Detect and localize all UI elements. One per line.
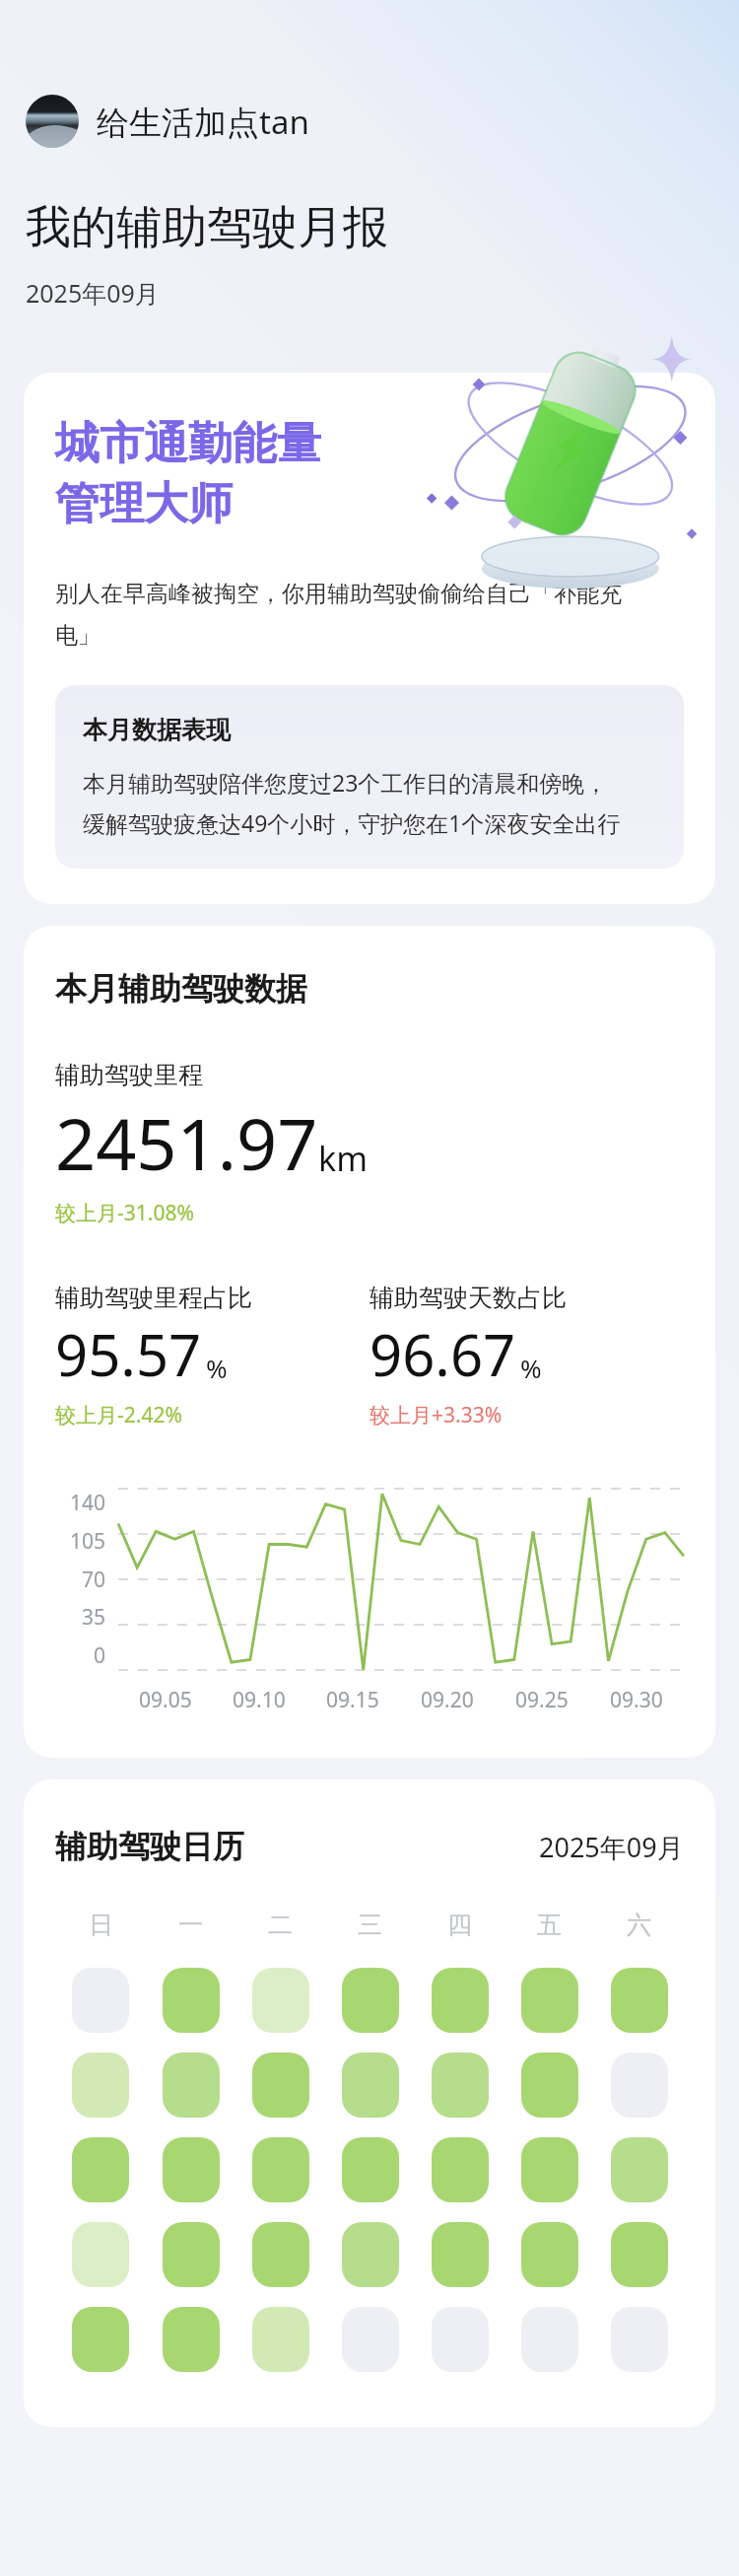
button[interactable]: 城市通勤能量 — [24, 373, 715, 904]
staticText: 给生活加点tan — [97, 100, 309, 144]
button[interactable]: 辅助驾驶日历 — [24, 1779, 715, 2427]
button[interactable] — [611, 2307, 668, 2372]
button[interactable] — [521, 2053, 578, 2118]
button[interactable] — [252, 2307, 309, 2372]
staticText: 六 — [627, 1910, 651, 1940]
button[interactable] — [342, 2307, 399, 2372]
button[interactable] — [342, 2053, 399, 2118]
staticText: 辅助驾驶里程占比 — [55, 1283, 252, 1313]
staticText: 2025年09月 — [26, 276, 160, 310]
staticText: 0 — [94, 1641, 106, 1670]
staticText: 本月辅助驾驶陪伴您度过23个工作日的清晨和傍晚， 缓解驾驶疲惫达49个小时，守护… — [83, 767, 621, 839]
staticText: 较上月-2.42% — [55, 1401, 182, 1429]
staticText: 35 — [82, 1603, 106, 1632]
button[interactable] — [521, 2222, 578, 2287]
button[interactable] — [163, 2222, 220, 2287]
button[interactable]: 本月数据表现 — [55, 685, 684, 869]
staticText: 别人在早高峰被掏空，你用辅助驾驶偷偷给自己「补能充 电」 — [55, 580, 622, 650]
staticText: 四 — [447, 1910, 472, 1940]
staticText: 96.67 — [369, 1315, 516, 1393]
button[interactable]: 本月辅助驾驶数据 — [24, 926, 715, 1758]
button[interactable] — [342, 2137, 399, 2202]
button[interactable]: 辅助驾驶天数占比 — [369, 1283, 684, 1429]
button[interactable]: User avatar — [22, 91, 313, 152]
staticText: 辅助驾驶日历 — [55, 1827, 244, 1866]
staticText: 本月辅助驾驶数据 — [55, 969, 307, 1009]
button[interactable] — [252, 1968, 309, 2033]
staticText: 管理大师 — [55, 476, 233, 532]
staticText: 2451.97 — [55, 1094, 318, 1191]
button[interactable] — [432, 2053, 489, 2118]
button[interactable] — [72, 2053, 129, 2118]
staticText: 09.25 — [515, 1686, 569, 1714]
staticText: km — [318, 1136, 368, 1181]
staticText: 09.15 — [326, 1686, 379, 1714]
staticText: 日 — [89, 1910, 113, 1940]
staticText: 一 — [178, 1910, 203, 1940]
staticText: 较上月-31.08% — [55, 1199, 194, 1227]
staticText: 09.20 — [421, 1686, 474, 1714]
button[interactable] — [521, 1968, 578, 2033]
staticText: 三 — [358, 1910, 382, 1940]
other: User avatar — [26, 95, 79, 148]
button[interactable] — [432, 2307, 489, 2372]
button[interactable] — [611, 2137, 668, 2202]
button[interactable] — [432, 2222, 489, 2287]
staticText: 09.05 — [139, 1686, 192, 1714]
staticText: 09.30 — [610, 1686, 663, 1714]
staticText: 城市通勤能量 — [55, 416, 321, 472]
staticText: 09.10 — [233, 1686, 286, 1714]
button[interactable] — [72, 1968, 129, 2033]
button[interactable] — [611, 2222, 668, 2287]
staticText: 二 — [268, 1910, 293, 1940]
staticText: 70 — [82, 1566, 106, 1594]
staticText: 105 — [70, 1527, 106, 1556]
button[interactable] — [342, 2222, 399, 2287]
other: Battery energy illustration — [422, 325, 707, 621]
button[interactable] — [163, 2053, 220, 2118]
staticText: 本月数据表现 — [83, 715, 231, 745]
staticText: 2025年09月 — [539, 1829, 684, 1865]
button[interactable] — [611, 2053, 668, 2118]
staticText: 我的辅助驾驶月报 — [26, 199, 388, 256]
button[interactable] — [163, 2307, 220, 2372]
staticText: 较上月+3.33% — [369, 1401, 503, 1429]
button[interactable] — [342, 1968, 399, 2033]
staticText: 140 — [70, 1489, 106, 1517]
staticText: % — [206, 1351, 228, 1385]
button[interactable]: 辅助驾驶里程占比 — [55, 1283, 369, 1429]
button[interactable] — [72, 2137, 129, 2202]
button[interactable] — [432, 2137, 489, 2202]
staticText: 辅助驾驶天数占比 — [369, 1283, 567, 1313]
button[interactable] — [521, 2137, 578, 2202]
button[interactable] — [521, 2307, 578, 2372]
button[interactable] — [72, 2222, 129, 2287]
button[interactable] — [252, 2053, 309, 2118]
staticText: % — [520, 1351, 542, 1385]
button[interactable] — [252, 2222, 309, 2287]
staticText: 辅助驾驶里程 — [55, 1060, 203, 1090]
button[interactable] — [163, 1968, 220, 2033]
staticText: 95.57 — [55, 1315, 202, 1393]
staticText: 五 — [537, 1910, 562, 1940]
button[interactable] — [432, 1968, 489, 2033]
button[interactable] — [163, 2137, 220, 2202]
button[interactable] — [72, 2307, 129, 2372]
button[interactable] — [252, 2137, 309, 2202]
button[interactable] — [611, 1968, 668, 2033]
